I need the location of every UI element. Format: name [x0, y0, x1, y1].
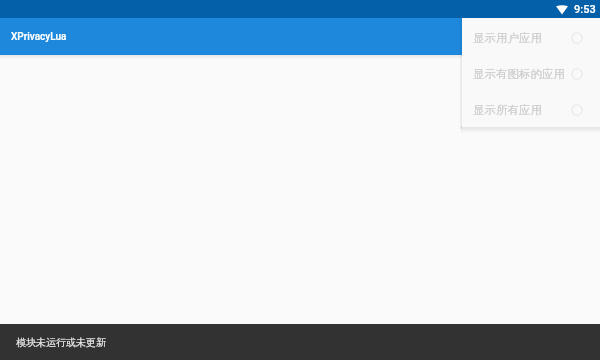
button[interactable]: 显示所有应用 [462, 92, 600, 127]
staticText: 显示所有应用 [473, 103, 542, 117]
button[interactable]: 显示用户应用 [462, 20, 600, 56]
button[interactable]: 显示有图标的应用 [462, 56, 600, 92]
staticText: 9:53 [574, 3, 596, 16]
other: Wi-Fi connected [556, 4, 568, 15]
staticText: 模块未运行或未更新 [16, 336, 106, 349]
staticText: 显示有图标的应用 [473, 67, 565, 81]
staticText: 显示用户应用 [473, 31, 542, 45]
button[interactable]: 模块未运行或未更新 [0, 324, 600, 360]
staticText: XPrivacyLua [11, 31, 67, 43]
